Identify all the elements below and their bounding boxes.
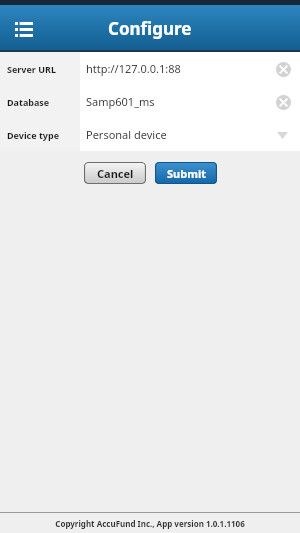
button[interactable]: Submit — [155, 162, 217, 184]
staticText: Copyright AccuFund Inc., App version 1.0… — [55, 518, 245, 529]
button[interactable]: Server URL — [0, 52, 300, 85]
staticText: Samp601_ms — [86, 94, 155, 109]
staticText: Cancel — [97, 166, 134, 181]
button[interactable]: Menu — [8, 13, 40, 45]
button[interactable]: Clear Server URL — [272, 58, 294, 80]
button[interactable]: Clear Database — [272, 91, 294, 113]
button[interactable]: Cancel — [84, 162, 146, 184]
button[interactable]: Device type — [0, 118, 300, 151]
staticText: Submit — [167, 166, 206, 181]
staticText: Device type — [7, 129, 60, 141]
button[interactable]: Select Device type — [271, 124, 293, 146]
staticText: Personal device — [86, 127, 167, 142]
staticText: Database — [7, 96, 50, 108]
staticText: Server URL — [7, 63, 56, 75]
button[interactable]: Database — [0, 85, 300, 118]
staticText: http://127.0.0.1:88 — [86, 61, 181, 76]
staticText: Configure — [108, 17, 192, 40]
